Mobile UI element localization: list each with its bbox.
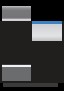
button[interactable] [2, 6, 31, 21]
button[interactable] [2, 64, 31, 81]
button[interactable] [32, 21, 62, 41]
